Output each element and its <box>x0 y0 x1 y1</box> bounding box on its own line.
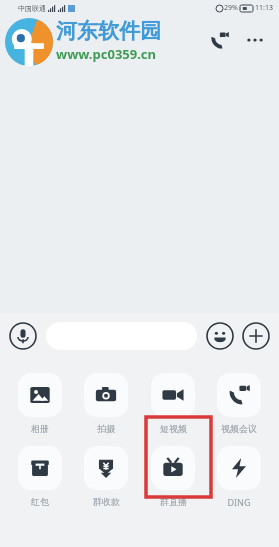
button[interactable]: Video call <box>203 24 235 56</box>
button[interactable]: Group payment <box>76 446 136 507</box>
button[interactable]: Emoji <box>205 321 235 351</box>
other: DING <box>217 446 261 490</box>
button[interactable]: Short video <box>143 373 203 434</box>
other: Video conference <box>217 373 261 417</box>
other: Photo album <box>18 373 62 417</box>
button[interactable]: Photo album <box>10 373 70 434</box>
staticText: 11:13 <box>255 3 273 13</box>
button[interactable]: Voice input <box>8 321 38 351</box>
staticText: 红包 <box>31 496 49 507</box>
staticText: 相册 <box>31 423 49 434</box>
staticText: 中国联通 <box>18 4 46 13</box>
other: Red packet <box>18 446 62 490</box>
other: Camera <box>84 373 128 417</box>
staticText: 群收款 <box>93 496 120 507</box>
staticText: 短视频 <box>160 423 187 434</box>
button[interactable]: More options <box>239 24 271 56</box>
staticText: 群直播 <box>160 496 187 507</box>
button[interactable]: More attachments <box>241 321 271 351</box>
staticText: 河东软件园 <box>56 18 161 44</box>
button[interactable]: Group livestream <box>143 446 203 507</box>
staticText: 29% <box>224 3 238 13</box>
other: Group payment <box>84 446 128 490</box>
staticText: 拍摄 <box>97 423 115 434</box>
button[interactable]: Video conference <box>209 373 269 434</box>
other: Group livestream <box>151 446 195 490</box>
staticText: DING <box>227 496 251 508</box>
button[interactable]: Red packet <box>10 446 70 507</box>
staticText: 视频会议 <box>221 423 257 434</box>
staticText: www.pc0359.cn <box>56 45 156 63</box>
button[interactable]: DING <box>209 446 269 508</box>
other: Short video <box>151 373 195 417</box>
button[interactable]: Camera <box>76 373 136 434</box>
